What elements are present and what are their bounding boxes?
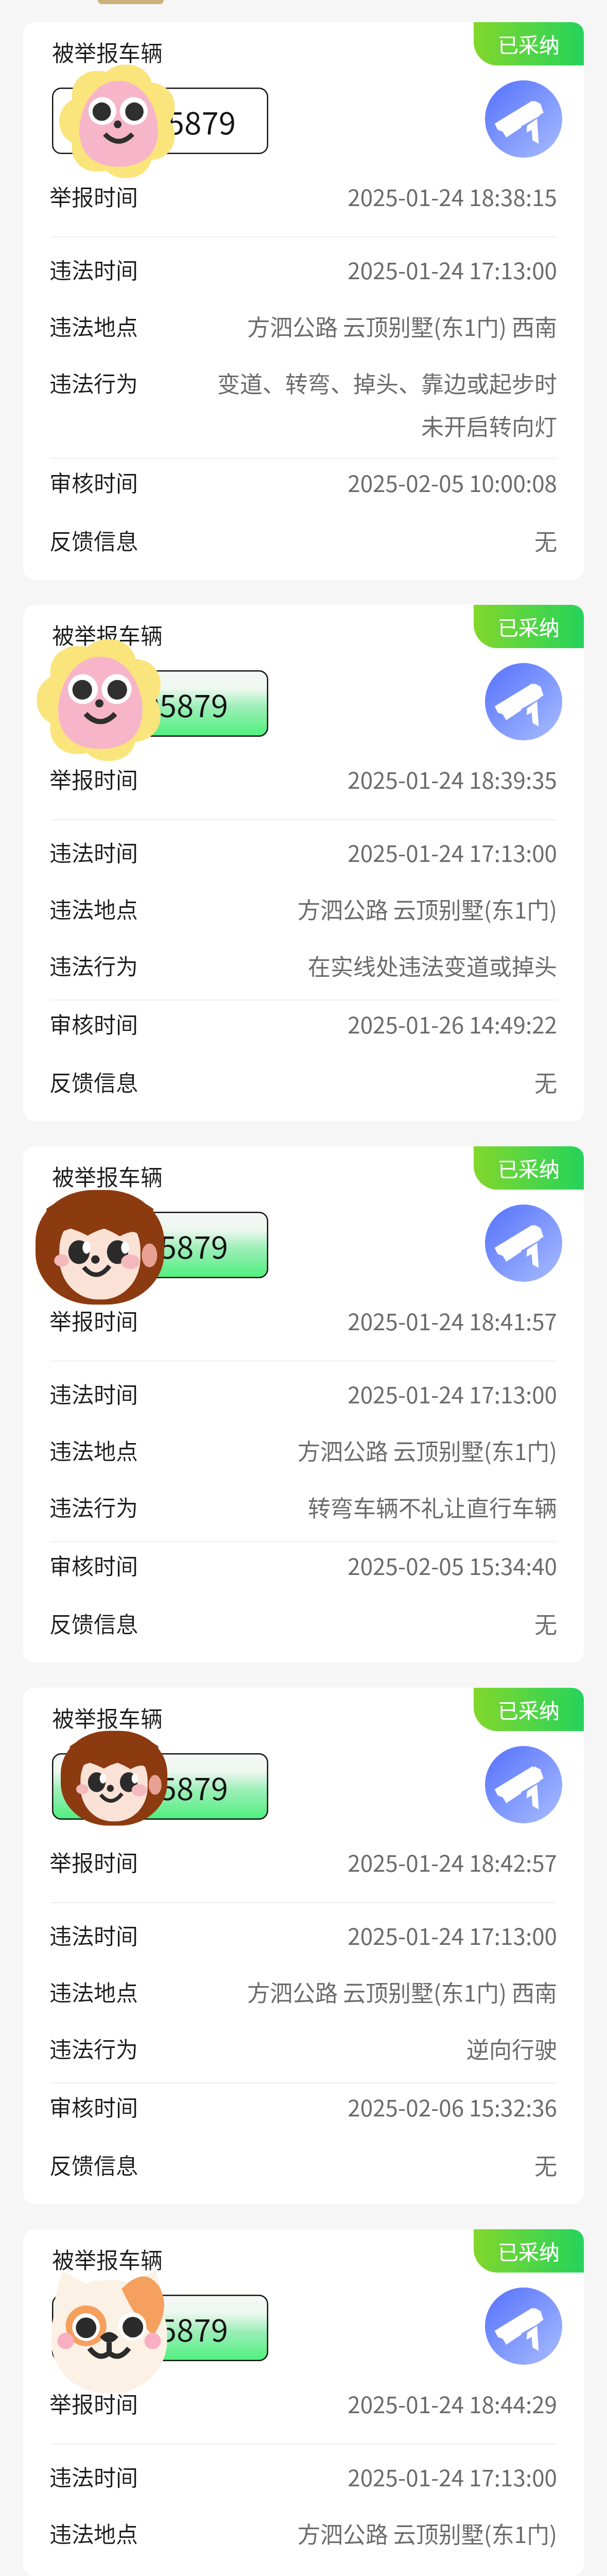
staticText: 方泗公路 云顶别墅(东1门) <box>297 1434 557 1467</box>
staticText: 方泗公路 云顶别墅(东1门) 西南 <box>247 310 557 343</box>
staticText: 沪A05879 <box>93 1764 228 1809</box>
staticText: 违法行为 <box>49 1490 160 1522</box>
button[interactable]: 已采纳 <box>474 605 584 648</box>
staticText: 已采纳 <box>498 612 560 641</box>
staticText: 方泗公路 云顶别墅(东1门) <box>297 2517 557 2550</box>
staticText: 违法行为 <box>49 2032 160 2064</box>
staticText: 2025-01-24 17:13:00 <box>348 1919 557 1952</box>
staticText: 沪A05879 <box>93 681 228 726</box>
staticText: 举报时间 <box>49 2387 160 2419</box>
staticText: 2025-01-24 18:41:57 <box>348 1304 557 1337</box>
staticText: 举报时间 <box>49 1304 160 1336</box>
button[interactable]: 查看抓拍图片 <box>485 1205 562 1282</box>
staticText: 已采纳 <box>498 29 560 59</box>
staticText: 反馈信息 <box>49 2148 160 2180</box>
staticText: 2025-01-24 18:38:15 <box>348 180 557 213</box>
staticText: 无 <box>534 1065 557 1098</box>
staticText: 变道、转弯、掉头、靠边或起步时 <box>217 366 557 399</box>
button[interactable]: 查看抓拍图片 <box>485 80 562 158</box>
staticText: 被举报车辆 <box>52 1160 163 1192</box>
staticText: 违法地点 <box>49 1975 160 2007</box>
staticText: 已采纳 <box>498 1694 560 1724</box>
staticText: 违法地点 <box>49 2517 160 2549</box>
staticText: 无 <box>534 1607 557 1640</box>
staticText: 违法时间 <box>49 1377 160 1409</box>
staticText: 沪A05879 <box>93 2306 228 2350</box>
staticText: 已采纳 <box>498 2236 560 2266</box>
staticText: 2025-01-24 17:13:00 <box>348 2460 557 2493</box>
staticText: 违法行为 <box>49 366 160 398</box>
button[interactable]: 被举报车辆 <box>23 605 584 1121</box>
button[interactable]: 被举报车辆 <box>23 1688 584 2204</box>
staticText: 被举报车辆 <box>52 2243 163 2275</box>
staticText: 2025-01-24 18:42:57 <box>348 1845 557 1878</box>
button[interactable]: 已采纳 <box>474 2229 584 2273</box>
staticText: 2025-01-24 17:13:00 <box>348 1377 557 1410</box>
staticText: 2025-02-06 15:32:36 <box>348 2090 557 2123</box>
button[interactable]: 查看抓拍图片 <box>485 663 562 740</box>
staticText: 反馈信息 <box>49 1607 160 1639</box>
staticText: 被举报车辆 <box>52 36 163 67</box>
staticText: 2025-01-26 14:49:22 <box>348 1007 557 1040</box>
staticText: 违法地点 <box>49 1434 160 1466</box>
staticText: 审核时间 <box>49 2090 160 2122</box>
button[interactable]: 被举报车辆 <box>23 1146 584 1663</box>
button[interactable]: 被举报车辆 <box>23 2229 584 2576</box>
staticText: 举报时间 <box>49 180 160 212</box>
staticText: 转弯车辆不礼让直行车辆 <box>308 1490 557 1523</box>
button[interactable] <box>98 0 164 4</box>
staticText: 已采纳 <box>498 1153 560 1183</box>
staticText: 审核时间 <box>49 466 160 498</box>
button[interactable]: 被举报车辆 <box>23 22 584 580</box>
staticText: 2025-01-24 18:39:35 <box>348 762 557 795</box>
staticText: 2025-02-05 10:00:08 <box>348 466 557 499</box>
staticText: 违法时间 <box>49 836 160 868</box>
staticText: 举报时间 <box>49 762 160 794</box>
staticText: 沪A05879 <box>93 1223 228 1267</box>
staticText: 举报时间 <box>49 1845 160 1877</box>
staticText: 违法时间 <box>49 1919 160 1951</box>
staticText: 反馈信息 <box>49 1065 160 1097</box>
staticText: 违法行为 <box>49 949 160 981</box>
staticText: 违法时间 <box>49 253 160 285</box>
staticText: 违法地点 <box>49 892 160 924</box>
staticText: 反馈信息 <box>49 524 160 556</box>
staticText: 被举报车辆 <box>52 1701 163 1733</box>
staticText: 沪A·05879 <box>84 98 236 143</box>
staticText: 审核时间 <box>49 1007 160 1039</box>
staticText: 2025-01-24 18:44:29 <box>348 2387 557 2420</box>
staticText: 方泗公路 云顶别墅(东1门) 西南 <box>247 1975 557 2008</box>
staticText: 审核时间 <box>49 1549 160 1581</box>
button[interactable]: 已采纳 <box>474 1146 584 1190</box>
staticText: 方泗公路 云顶别墅(东1门) <box>297 892 557 925</box>
staticText: 违法地点 <box>49 310 160 342</box>
staticText: 无 <box>534 2148 557 2181</box>
button[interactable]: 查看抓拍图片 <box>485 2287 562 2365</box>
button[interactable]: 已采纳 <box>474 22 584 65</box>
staticText: 未开启转向灯 <box>421 409 557 442</box>
staticText: 2025-01-24 17:13:00 <box>348 836 557 869</box>
staticText: 逆向行驶 <box>466 2032 557 2065</box>
staticText: 2025-01-24 17:13:00 <box>348 253 557 286</box>
staticText: 被举报车辆 <box>52 618 163 650</box>
staticText: 在实线处违法变道或掉头 <box>308 949 557 982</box>
staticText: 违法时间 <box>49 2460 160 2492</box>
staticText: 2025-02-05 15:34:40 <box>348 1549 557 1582</box>
staticText: 无 <box>534 524 557 557</box>
button[interactable]: 查看抓拍图片 <box>485 1746 562 1823</box>
button[interactable]: 已采纳 <box>474 1688 584 1731</box>
